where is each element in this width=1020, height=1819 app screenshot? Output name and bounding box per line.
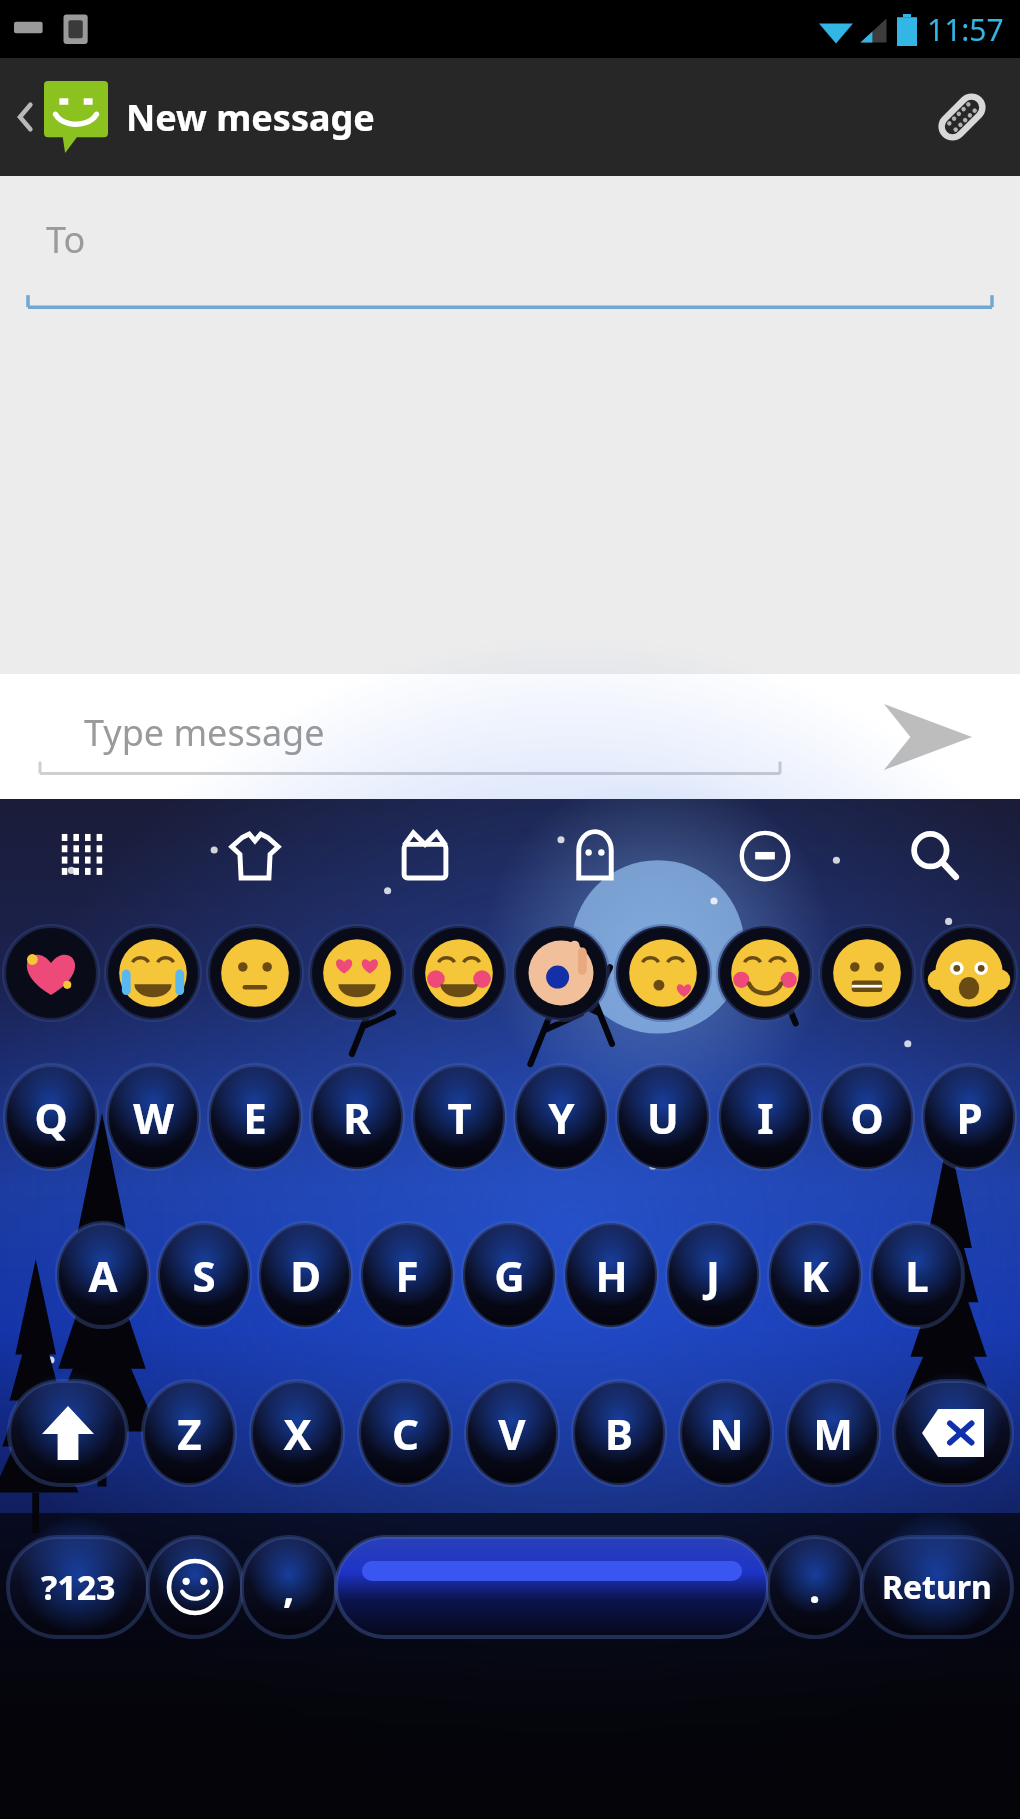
staticText: New message: [126, 93, 375, 142]
staticText: B: [605, 1405, 633, 1462]
button[interactable]: V: [458, 1354, 565, 1512]
button[interactable]: Emoji: [148, 1512, 242, 1662]
staticText: H: [595, 1247, 628, 1304]
button[interactable]: D: [254, 1196, 356, 1354]
staticText: A: [88, 1247, 118, 1304]
staticText: I: [757, 1089, 774, 1146]
staticText: R: [343, 1089, 371, 1146]
button[interactable]: blush: [408, 908, 510, 1038]
staticText: F: [395, 1247, 419, 1304]
button[interactable]: B: [565, 1354, 672, 1512]
button[interactable]: hearteyes: [306, 908, 408, 1038]
staticText: Type message: [84, 708, 325, 757]
staticText: T: [447, 1089, 472, 1146]
button[interactable]: R: [306, 1038, 408, 1196]
button[interactable]: Send: [866, 686, 990, 788]
button[interactable]: K: [764, 1196, 866, 1354]
button[interactable]: H: [560, 1196, 662, 1354]
other: Back: [16, 95, 34, 139]
staticText: ,: [283, 1560, 295, 1614]
button[interactable]: I: [714, 1038, 816, 1196]
staticText: E: [243, 1089, 267, 1146]
staticText: M: [813, 1405, 853, 1462]
button[interactable]: N: [672, 1354, 779, 1512]
button[interactable]: S: [153, 1196, 254, 1354]
button[interactable]: Back: [10, 75, 381, 159]
staticText: 11:57: [927, 9, 1004, 50]
button[interactable]: scream: [918, 908, 1020, 1038]
staticText: G: [494, 1247, 525, 1304]
button[interactable]: O: [816, 1038, 918, 1196]
button[interactable]: J: [662, 1196, 764, 1354]
button[interactable]: grimace: [816, 908, 918, 1038]
staticText: L: [905, 1247, 929, 1304]
staticText: Q: [34, 1089, 68, 1146]
button[interactable]: A: [52, 1196, 153, 1354]
button[interactable]: L: [866, 1196, 968, 1354]
staticText: J: [706, 1247, 720, 1304]
staticText: .: [809, 1560, 821, 1614]
button[interactable]: E: [204, 1038, 306, 1196]
button[interactable]: X: [243, 1354, 351, 1512]
staticText: ?123: [41, 1564, 116, 1610]
button[interactable]: heart: [0, 908, 102, 1038]
button[interactable]: Y: [510, 1038, 612, 1196]
button[interactable]: neutral: [204, 908, 306, 1038]
staticText: W: [133, 1089, 174, 1146]
staticText: X: [283, 1405, 312, 1462]
staticText: V: [498, 1405, 526, 1462]
staticText: To: [46, 215, 86, 264]
button[interactable]: Themes: [340, 803, 510, 908]
button[interactable]: Attach: [904, 63, 1020, 171]
staticText: N: [709, 1405, 744, 1462]
button[interactable]: ?123: [8, 1512, 148, 1662]
staticText: S: [192, 1247, 216, 1304]
staticText: Z: [177, 1405, 202, 1462]
staticText: O: [850, 1089, 884, 1146]
button[interactable]: .: [768, 1512, 862, 1662]
button[interactable]: Keyboard: [0, 803, 170, 908]
button[interactable]: G: [458, 1196, 560, 1354]
button[interactable]: ok: [510, 908, 612, 1038]
staticText: K: [801, 1247, 829, 1304]
button[interactable]: U: [612, 1038, 714, 1196]
button[interactable]: P: [918, 1038, 1020, 1196]
button[interactable]: smile: [714, 908, 816, 1038]
staticText: Y: [548, 1089, 575, 1146]
button[interactable]: Emoji pack: [510, 803, 680, 908]
button[interactable]: ,: [242, 1512, 336, 1662]
button[interactable]: W: [102, 1038, 204, 1196]
button[interactable]: F: [356, 1196, 458, 1354]
button[interactable]: To: [0, 176, 1020, 316]
button[interactable]: Search: [850, 803, 1020, 908]
staticText: P: [956, 1089, 983, 1146]
button[interactable]: GIF: [680, 803, 850, 908]
button[interactable]: Type message: [40, 692, 780, 782]
button[interactable]: cry: [102, 908, 204, 1038]
button[interactable]: Backspace: [886, 1354, 1020, 1512]
staticText: C: [392, 1405, 419, 1462]
staticText: D: [290, 1247, 321, 1304]
button[interactable]: Z: [135, 1354, 243, 1512]
button[interactable]: M: [779, 1354, 886, 1512]
button[interactable]: C: [351, 1354, 458, 1512]
button[interactable]: Q: [0, 1038, 102, 1196]
staticText: U: [647, 1089, 679, 1146]
button[interactable]: T: [408, 1038, 510, 1196]
button[interactable]: Return: [862, 1512, 1012, 1662]
button[interactable]: Stickers: [170, 803, 340, 908]
staticText: Return: [882, 1565, 992, 1609]
button[interactable]: Shift: [0, 1354, 135, 1512]
button[interactable]: Space: [336, 1512, 768, 1662]
button[interactable]: kiss: [612, 908, 714, 1038]
